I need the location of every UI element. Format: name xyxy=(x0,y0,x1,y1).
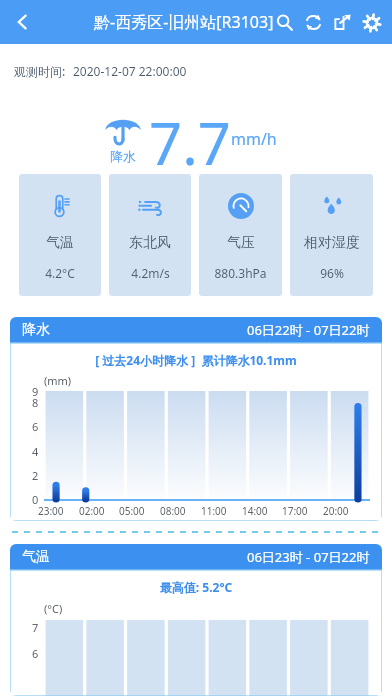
button[interactable]: Refresh xyxy=(299,8,328,37)
staticText: 11:00 xyxy=(201,504,227,518)
staticText: 2020-12-07 22:00:00 xyxy=(73,63,187,79)
button[interactable]: Share xyxy=(328,8,357,37)
button[interactable]: Settings xyxy=(357,8,386,37)
button[interactable]: 气温 xyxy=(10,544,382,696)
staticText: [ 过去24小时降水 ] 累计降水10.1mm xyxy=(10,352,382,368)
staticText: 降水 xyxy=(110,148,136,164)
staticText: 4 xyxy=(32,444,39,459)
staticText: 2 xyxy=(32,468,39,483)
staticText: 观测时间: xyxy=(14,63,66,79)
staticText: 6 xyxy=(32,419,39,434)
button[interactable]: 相对湿度 xyxy=(290,174,373,296)
staticText: 06日23时 - 07日22时 xyxy=(247,548,370,566)
staticText: 7.7 xyxy=(149,103,231,182)
button[interactable]: Back xyxy=(0,0,44,44)
staticText: 8 xyxy=(32,395,39,410)
button[interactable]: 气压 xyxy=(199,174,282,296)
staticText: 6 xyxy=(32,646,39,661)
staticText: (mm) xyxy=(44,373,72,388)
button[interactable]: 东北风 xyxy=(109,174,191,296)
staticText: 东北风 xyxy=(129,234,171,252)
staticText: 08:00 xyxy=(160,504,186,518)
staticText: 气温 xyxy=(46,234,74,252)
staticText: mm/h xyxy=(231,128,277,150)
staticText: 05:00 xyxy=(119,504,145,518)
button[interactable]: Search xyxy=(270,8,299,37)
staticText: 17:00 xyxy=(282,504,308,518)
staticText: 23:00 xyxy=(38,504,64,518)
button[interactable]: 降水 xyxy=(10,317,382,521)
staticText: 880.3hPa xyxy=(214,265,267,281)
staticText: 最高值: 5.2°C xyxy=(10,579,382,595)
staticText: 96% xyxy=(320,265,344,281)
button[interactable]: 气温 xyxy=(19,174,101,296)
staticText: 0 xyxy=(32,492,39,507)
staticText: 相对湿度 xyxy=(304,234,360,252)
staticText: 降水 xyxy=(22,321,50,339)
staticText: 02:00 xyxy=(79,504,105,518)
staticText: 20:00 xyxy=(323,504,349,518)
staticText: 气压 xyxy=(227,234,255,252)
staticText: 4.2°C xyxy=(45,265,75,281)
staticText: 4.2m/s xyxy=(131,265,170,281)
staticText: 气温 xyxy=(22,548,50,566)
staticText: 7 xyxy=(32,620,39,635)
staticText: 06日22时 - 07日22时 xyxy=(247,321,370,339)
staticText: 14:00 xyxy=(242,504,268,518)
staticText: 9 xyxy=(32,384,39,399)
staticText: (°C) xyxy=(44,601,63,616)
staticText: 黔-西秀区-旧州站[R3103] xyxy=(94,11,274,33)
